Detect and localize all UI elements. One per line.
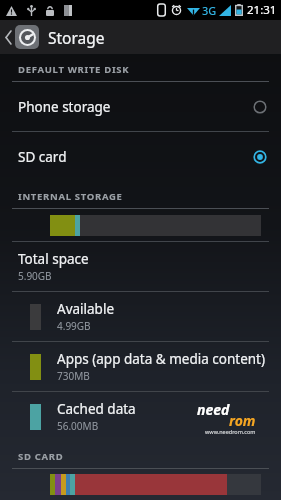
button[interactable]: Total space	[0, 242, 281, 291]
staticText: 5.90GB	[18, 269, 52, 283]
button[interactable]: Cached data	[0, 392, 281, 441]
other: Phone storage	[253, 100, 267, 114]
staticText: rom	[229, 411, 256, 430]
staticText: Available	[57, 300, 114, 318]
button[interactable]: Apps (app data & media content)	[0, 342, 281, 391]
staticText: Cached data	[57, 400, 136, 418]
other: SD card	[253, 150, 267, 164]
staticText: 4.99GB	[57, 319, 91, 333]
button[interactable]: Navigate up, Storage	[0, 20, 281, 54]
staticText: need	[197, 400, 230, 419]
staticText: 730MB	[57, 369, 90, 383]
staticText: 56.00MB	[57, 419, 99, 433]
button[interactable]: SD card	[0, 132, 281, 181]
staticText: Phone storage	[18, 98, 253, 116]
staticText: Total space	[18, 250, 89, 268]
staticText: SD CARD	[18, 450, 64, 463]
staticText: www.needrom.com	[205, 428, 256, 435]
button[interactable]: Available	[0, 292, 281, 341]
staticText: DEFAULT WRITE DISK	[18, 63, 130, 76]
staticText: 21:31	[247, 2, 277, 18]
staticText: Storage	[48, 27, 105, 48]
staticText: Apps (app data & media content)	[57, 350, 266, 368]
staticText: 3G	[202, 3, 217, 18]
button[interactable]: Phone storage	[0, 82, 281, 131]
staticText: INTERNAL STORAGE	[18, 190, 123, 203]
staticText: SD card	[18, 148, 253, 166]
